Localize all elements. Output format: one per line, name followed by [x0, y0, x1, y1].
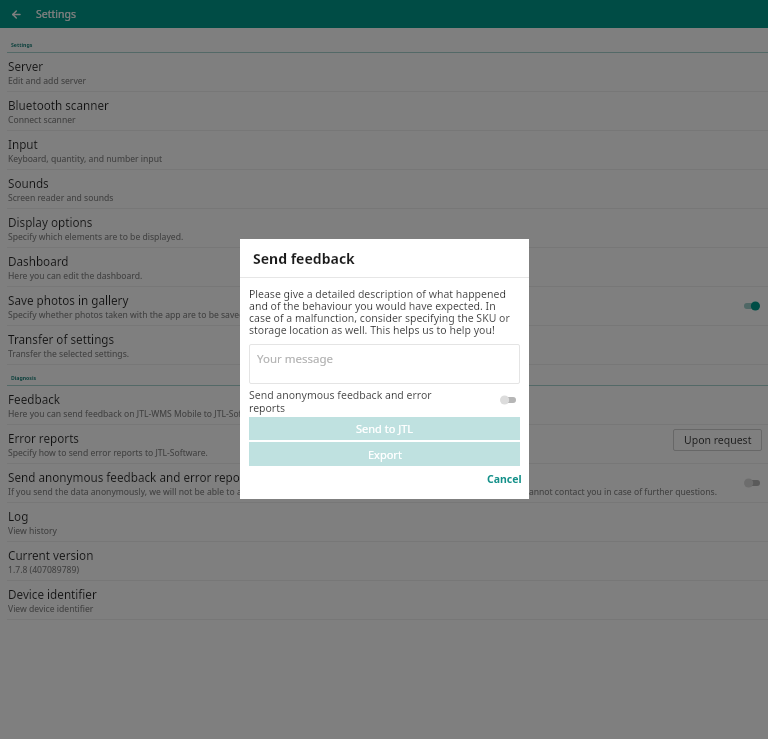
- button[interactable]: Server: [0, 53, 768, 92]
- staticText: Send anonymous feedback and error report…: [249, 389, 456, 415]
- staticText: Feedback: [8, 391, 61, 407]
- button[interactable]: Upon request: [673, 429, 762, 451]
- staticText: Save photos in gallery: [8, 292, 129, 308]
- button[interactable]: Send anonymous feedback and error report…: [500, 394, 516, 406]
- button[interactable]: Save photos in gallery: [744, 300, 760, 312]
- staticText: Display options: [8, 214, 93, 230]
- staticText: Send to JTL: [356, 421, 414, 436]
- button[interactable]: Log: [0, 503, 768, 542]
- staticText: Log: [8, 508, 29, 524]
- button[interactable]: Export: [249, 442, 520, 466]
- staticText: Device identifier: [8, 586, 97, 602]
- staticText: Specify how to send error reports to JTL…: [8, 447, 208, 459]
- button[interactable]: Sounds: [0, 170, 768, 209]
- staticText: If you send the data anonymously, we wil…: [8, 486, 717, 498]
- button[interactable]: Send anonymous feedback and error report…: [744, 477, 760, 489]
- staticText: Transfer of settings: [8, 331, 115, 347]
- staticText: Diagnosis: [11, 374, 37, 381]
- staticText: Dashboard: [8, 253, 69, 269]
- staticText: Settings: [36, 7, 76, 21]
- staticText: Transfer the selected settings.: [8, 348, 130, 360]
- staticText: 1.7.8 (407089789): [8, 564, 79, 576]
- staticText: Upon request: [684, 433, 752, 447]
- staticText: Server: [8, 58, 44, 74]
- button[interactable]: Display options: [0, 209, 768, 248]
- staticText: Connect scanner: [8, 114, 76, 126]
- staticText: Sounds: [8, 175, 49, 191]
- staticText: Input: [8, 136, 38, 152]
- button[interactable]: Send anonymous feedback and error report…: [0, 464, 768, 503]
- button[interactable]: Feedback: [0, 386, 768, 425]
- button[interactable]: Error reports: [0, 425, 768, 464]
- staticText: Send anonymous feedback and error report…: [8, 469, 255, 485]
- staticText: Bluetooth scanner: [8, 97, 109, 113]
- button[interactable]: Current version: [0, 542, 768, 581]
- staticText: Error reports: [8, 430, 79, 446]
- staticText: Export: [368, 447, 402, 462]
- button[interactable]: Send to JTL: [249, 417, 520, 440]
- button[interactable]: Bluetooth scanner: [0, 92, 768, 131]
- staticText: Edit and add server: [8, 75, 87, 87]
- staticText: Here you can send feedback on JTL-WMS Mo…: [8, 408, 267, 420]
- button[interactable]: Save photos in gallery: [0, 287, 768, 326]
- staticText: Current version: [8, 547, 94, 563]
- button[interactable]: Back: [6, 4, 26, 24]
- staticText: Please give a detailed description of wh…: [249, 289, 520, 337]
- staticText: Settings: [11, 41, 33, 48]
- button[interactable]: Transfer of settings: [0, 326, 768, 365]
- staticText: Specify which elements are to be display…: [8, 231, 184, 243]
- staticText: Send feedback: [253, 249, 355, 268]
- staticText: Keyboard, quantity, and number input: [8, 153, 163, 165]
- button[interactable]: Your message: [249, 344, 520, 384]
- staticText: Cancel: [487, 472, 522, 486]
- button[interactable]: Dashboard: [0, 248, 768, 287]
- button[interactable]: Device identifier: [0, 581, 768, 620]
- button[interactable]: Cancel: [481, 470, 522, 488]
- button[interactable]: Input: [0, 131, 768, 170]
- staticText: View history: [8, 525, 57, 537]
- staticText: View device identifier: [8, 603, 94, 615]
- staticText: Your message: [257, 351, 334, 367]
- staticText: Screen reader and sounds: [8, 192, 114, 204]
- staticText: Here you can edit the dashboard.: [8, 270, 143, 282]
- staticText: Specify whether photos taken with the ap…: [8, 309, 302, 321]
